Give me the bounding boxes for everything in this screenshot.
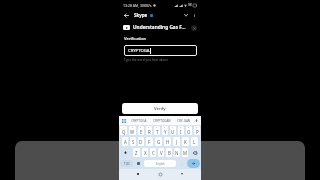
button[interactable]: Close video (191, 25, 197, 31)
button[interactable]: CRYPTOGA (124, 45, 197, 56)
staticText: 7 (172, 126, 174, 129)
button[interactable]: 6 (162, 126, 168, 135)
button[interactable]: F (146, 137, 153, 146)
button[interactable]: 9 (186, 126, 192, 135)
button[interactable]: 2 (129, 126, 136, 135)
button[interactable]: L (191, 137, 198, 146)
staticText: M (183, 150, 187, 156)
button[interactable]: C (150, 148, 156, 157)
staticText: E (140, 129, 143, 135)
staticText: 5 (156, 126, 158, 129)
button[interactable]: A (122, 137, 128, 146)
staticText: A (124, 139, 127, 145)
button[interactable]: 7 (170, 126, 176, 135)
button[interactable]: 4 (146, 126, 152, 135)
button[interactable]: H (164, 137, 171, 146)
staticText: 9 (188, 126, 190, 129)
staticText: T (156, 129, 159, 135)
button[interactable]: Z (133, 148, 140, 157)
staticText: CRYPTOGA (128, 48, 150, 54)
staticText: 6 (164, 126, 166, 129)
staticText: W (130, 129, 135, 135)
staticText: English (156, 162, 165, 166)
button[interactable]: Verify (122, 103, 198, 114)
staticText: I (180, 129, 182, 135)
button[interactable]: X (142, 148, 148, 157)
staticText: N (175, 150, 179, 156)
staticText: X (144, 150, 147, 156)
staticText: 2 (132, 126, 134, 129)
button[interactable]: 3 (138, 126, 144, 135)
button[interactable]: More options (190, 11, 198, 19)
staticText: Type the word you hear above (124, 58, 168, 62)
staticText: 1 (123, 126, 125, 129)
staticText: CRYPTOGAN (153, 119, 171, 123)
staticText: Understanding Gas F... (133, 24, 186, 31)
button[interactable]: Back (122, 11, 130, 19)
staticText: 3 (140, 126, 142, 129)
button[interactable]: J (173, 137, 180, 146)
button[interactable]: 1 (120, 126, 127, 135)
button[interactable]: Enter (187, 159, 200, 168)
staticText: ?123 (124, 162, 130, 166)
staticText: CRY..GAN (177, 119, 191, 123)
staticText: 8 (180, 126, 182, 129)
button[interactable]: M (182, 148, 188, 157)
staticText: G (157, 139, 161, 145)
staticText: Skype (134, 12, 148, 18)
staticText: J (176, 139, 178, 145)
button[interactable]: English (144, 160, 176, 167)
staticText: 0 (196, 126, 198, 129)
staticText: H (166, 139, 170, 145)
button[interactable]: 5 (154, 126, 160, 135)
button[interactable]: K (182, 137, 189, 146)
staticText: R (148, 129, 151, 135)
button[interactable]: ?123 (120, 160, 133, 167)
button[interactable]: S (130, 137, 136, 146)
button[interactable]: B (166, 148, 172, 157)
button[interactable]: G (155, 137, 162, 146)
staticText: C (152, 150, 155, 156)
staticText: B (168, 150, 171, 156)
staticText: S (132, 139, 135, 145)
staticText: 4 (148, 126, 150, 129)
staticText: . (181, 162, 182, 166)
button[interactable]: Backspace (190, 148, 200, 157)
button[interactable]: N (174, 148, 180, 157)
button[interactable]: Recents (135, 171, 141, 177)
staticText: Verify (154, 106, 166, 112)
staticText: 13:28 AM, 30KB/s (123, 3, 152, 8)
button[interactable]: Voice input (194, 118, 199, 123)
staticText: O (187, 129, 191, 135)
staticText: Y (164, 129, 167, 135)
button[interactable]: Shift (120, 148, 131, 157)
staticText: Q (122, 129, 126, 135)
staticText: U (171, 129, 175, 135)
button[interactable]: Comma (134, 158, 143, 169)
staticText: D (139, 139, 143, 145)
button[interactable]: Back (179, 171, 185, 177)
button[interactable]: Home (157, 171, 163, 177)
staticText: L (193, 139, 196, 145)
staticText: K (184, 139, 187, 145)
button[interactable]: V (158, 148, 164, 157)
button[interactable]: D (138, 137, 144, 146)
staticText: V (160, 150, 163, 156)
button[interactable]: Expand (182, 11, 190, 19)
staticText: 98 (188, 3, 192, 7)
staticText: Verification (124, 36, 147, 42)
staticText: P (196, 129, 199, 135)
button[interactable]: Keyboard menu (121, 118, 127, 124)
button[interactable]: 0 (194, 126, 200, 135)
staticText: CRYPTOGA (131, 119, 147, 123)
button[interactable]: 8 (178, 126, 184, 135)
staticText: F (148, 139, 151, 145)
staticText: Z (135, 150, 138, 156)
